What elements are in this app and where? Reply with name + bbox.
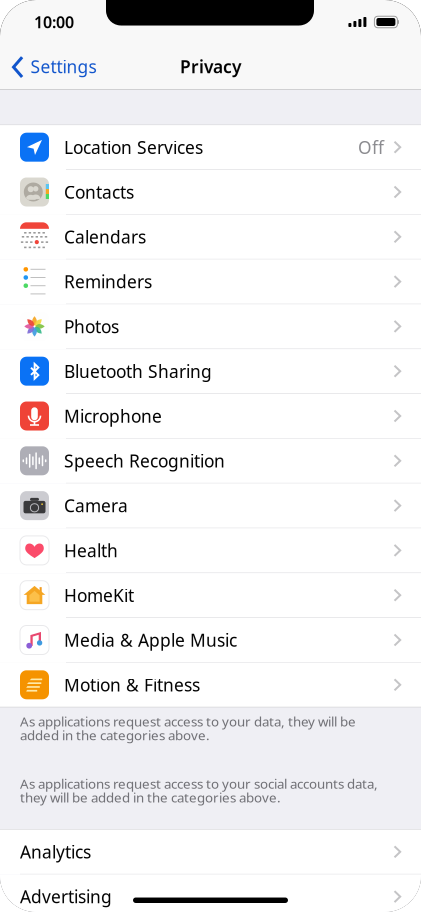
button[interactable]: HomeKit [0,573,421,618]
staticText: Off [358,136,384,159]
button[interactable]: Settings [0,46,96,87]
button[interactable]: Location Services [0,125,421,170]
staticText: Bluetooth Sharing [64,360,212,383]
button[interactable]: Camera [0,484,421,528]
staticText: Photos [64,315,119,338]
staticText: Media & Apple Music [64,628,237,651]
staticText: Camera [64,494,128,517]
staticText: Location Services [64,136,203,159]
staticText: Health [64,539,118,562]
button[interactable]: Microphone [0,394,421,439]
button[interactable]: Analytics [0,830,421,875]
staticText: they will be added in the categories abo… [20,788,281,806]
staticText: 10:00 [34,11,74,33]
staticText: Privacy [180,55,241,78]
button[interactable]: Calendars [0,215,421,260]
button[interactable]: Photos [0,304,421,349]
staticText: Speech Recognition [64,449,225,472]
staticText: Analytics [20,840,91,863]
button[interactable]: Motion & Fitness [0,663,421,707]
staticText: Settings [30,55,96,78]
button[interactable]: Reminders [0,260,421,304]
button[interactable]: Health [0,528,421,573]
button[interactable]: Advertising [0,875,421,912]
button[interactable]: Speech Recognition [0,439,421,484]
staticText: Motion & Fitness [64,673,200,696]
staticText: HomeKit [64,584,134,607]
staticText: As applications request access to your s… [20,775,378,792]
staticText: Contacts [64,180,134,203]
staticText: Microphone [64,404,162,427]
staticText: added in the categories above. [20,726,210,744]
staticText: Advertising [20,885,112,908]
staticText: As applications request access to your d… [20,712,356,730]
staticText: Reminders [64,270,152,293]
button[interactable]: Contacts [0,170,421,215]
button[interactable]: Media & Apple Music [0,618,421,663]
staticText: Calendars [64,225,146,248]
button[interactable]: Bluetooth Sharing [0,349,421,394]
